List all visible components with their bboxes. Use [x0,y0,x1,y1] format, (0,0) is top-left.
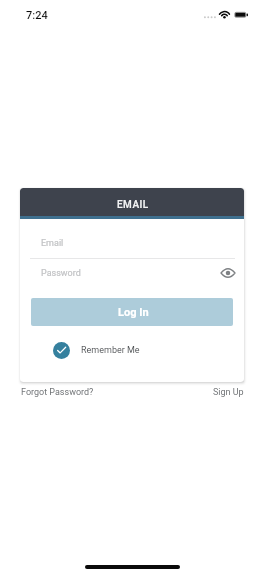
button[interactable]: Log In [31,298,233,326]
other: Signal, wifi and battery status [202,9,250,21]
button[interactable]: Sign Up [213,387,244,398]
staticText: 7:24 [26,9,48,22]
button[interactable]: Show password [215,260,241,286]
staticText: Log In [118,306,149,319]
staticText: Remember Me [81,345,140,356]
button[interactable]: Forgot Password? [21,387,94,398]
button[interactable]: Remember Me [53,342,140,359]
button[interactable]: Password [20,263,244,289]
staticText: Sign Up [213,387,244,398]
staticText: EMAIL [117,199,149,211]
staticText: Password [41,268,81,279]
staticText: Email [41,238,64,249]
button[interactable]: Email [20,233,244,259]
staticText: Forgot Password? [21,387,94,398]
